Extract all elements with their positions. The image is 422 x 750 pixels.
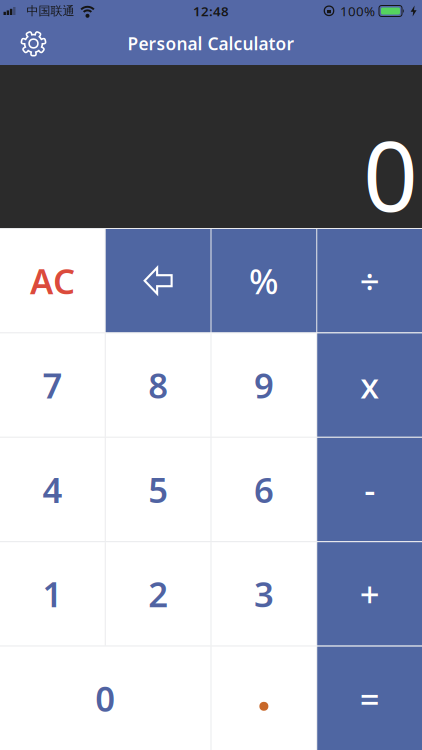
- button[interactable]: ÷: [317, 229, 422, 332]
- button[interactable]: 7: [0, 333, 105, 437]
- staticText: 9: [254, 362, 274, 408]
- button[interactable]: 6: [211, 438, 316, 541]
- staticText: 6: [254, 466, 274, 512]
- staticText: 0: [363, 110, 418, 238]
- button[interactable]: 9: [211, 333, 316, 437]
- button[interactable]: 0: [0, 647, 210, 750]
- staticText: -: [364, 466, 375, 512]
- button[interactable]: 2: [106, 542, 211, 646]
- staticText: 3: [254, 571, 274, 617]
- staticText: %: [249, 258, 279, 304]
- staticText: x: [360, 362, 379, 408]
- button[interactable]: Backspace: [106, 229, 211, 332]
- staticText: 100%: [340, 2, 375, 20]
- button[interactable]: x: [317, 333, 422, 437]
- staticText: Personal Calculator: [127, 32, 294, 55]
- staticText: 5: [148, 466, 168, 512]
- button[interactable]: %: [211, 229, 316, 332]
- staticText: +: [360, 571, 380, 617]
- staticText: 中国联通: [26, 4, 74, 18]
- button[interactable]: =: [317, 647, 422, 750]
- staticText: 8: [148, 362, 168, 408]
- button[interactable]: 4: [0, 438, 105, 541]
- button[interactable]: +: [317, 542, 422, 646]
- staticText: =: [360, 675, 380, 721]
- button[interactable]: Decimal point: [211, 647, 316, 750]
- staticText: 2: [148, 571, 168, 617]
- button[interactable]: 3: [211, 542, 316, 646]
- staticText: 0: [95, 675, 115, 721]
- staticText: 4: [42, 466, 62, 512]
- button[interactable]: Settings: [20, 30, 47, 57]
- button[interactable]: 1: [0, 542, 105, 646]
- staticText: 12:48: [193, 2, 229, 20]
- staticText: 7: [42, 362, 62, 408]
- button[interactable]: 5: [106, 438, 211, 541]
- staticText: AC: [30, 258, 75, 304]
- button[interactable]: 8: [106, 333, 211, 437]
- staticText: 1: [42, 571, 62, 617]
- button[interactable]: -: [317, 438, 422, 541]
- staticText: ÷: [360, 258, 380, 304]
- button[interactable]: AC: [0, 229, 105, 332]
